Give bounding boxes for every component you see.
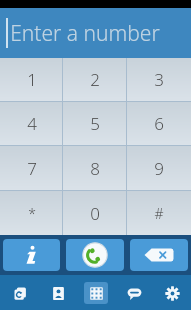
staticText: 4 [27,112,37,135]
staticText: 2 [90,68,100,91]
button[interactable]: Settings [153,275,191,310]
button[interactable]: 4 [0,102,63,145]
button[interactable]: 3 [127,58,191,101]
staticText: 0 [90,202,100,225]
staticText: Enter a number [10,19,160,48]
button[interactable]: 9 [127,146,191,190]
staticText: 6 [154,112,164,135]
button[interactable]: 7 [0,146,63,190]
button[interactable]: 8 [63,146,127,190]
button[interactable]: 6 [127,102,191,145]
button[interactable]: Enter a number [0,8,191,58]
staticText: 9 [154,157,164,180]
staticText: 1 [27,68,37,91]
button[interactable]: * [0,191,63,235]
staticText: 3 [154,68,164,91]
button[interactable]: Call [66,239,124,271]
button[interactable]: Dialpad [77,275,115,310]
button[interactable]: 0 [63,191,127,235]
button[interactable]: 2 [63,58,127,101]
staticText: 7 [27,157,37,180]
button[interactable]: Call information [3,239,60,271]
button[interactable]: Contacts [39,275,77,310]
button[interactable]: # [127,191,191,235]
staticText: * [28,204,36,223]
button[interactable]: 5 [63,102,127,145]
button[interactable]: 1 [0,58,63,101]
button[interactable]: Recent calls [0,275,39,310]
button[interactable]: Delete [130,239,188,271]
staticText: 8 [90,157,100,180]
staticText: 5 [90,112,100,135]
button[interactable]: Messages [115,275,153,310]
staticText: # [154,204,164,223]
